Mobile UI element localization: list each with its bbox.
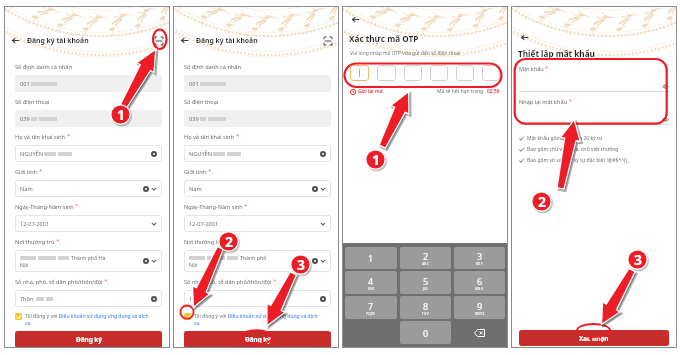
staticText: * [38,168,43,175]
button[interactable]: 9 [454,296,505,319]
staticText: 3 [297,255,305,274]
staticText: Ngày-Tháng-Năm sinh [184,203,243,211]
button[interactable]: Xác nhận [519,330,669,346]
button[interactable]: Back [351,15,360,24]
staticText: 7 [368,300,374,312]
staticText: Mã sẽ hết hạn trong [437,88,484,95]
staticText: Đăng ký tài khoản [196,36,258,45]
button[interactable]: Đăng ký [184,331,331,348]
button[interactable] [404,65,422,81]
other: Clear [151,296,157,302]
staticText: Số điện thoại [184,98,219,106]
staticText: Xác nhận [579,334,609,343]
button[interactable]: Thôn [15,290,162,307]
button[interactable] [456,65,474,81]
staticText: Giới tính [184,168,207,176]
staticText: * [235,133,240,140]
staticText: * [103,278,108,285]
staticText: 8 [423,300,429,312]
staticText: * [568,98,573,105]
staticText: Số định danh cá nhân [184,63,241,71]
staticText: ABC [422,262,429,266]
staticText: MNO [475,287,484,291]
button[interactable]: Thành phố Hà [15,250,162,272]
staticText: Tôi đồng ý với Điều khoản sử dụng ứng dụ… [25,313,155,327]
button[interactable]: 6 [454,271,505,294]
staticText: * [55,238,60,245]
button[interactable] [15,313,22,320]
staticText: * [74,203,79,210]
staticText: 9 [477,300,483,312]
staticText: Nơi thường trú [15,238,55,246]
other: Clear [312,258,318,264]
button[interactable]: 1 [184,290,331,307]
button[interactable] [350,65,369,81]
staticText: 1 [372,150,380,169]
staticText: Đăng ký [76,335,102,344]
staticText: 039 [20,115,30,123]
staticText: Nội [189,261,198,268]
other: Scan QR [155,37,163,45]
button[interactable]: NGUYỄN [15,145,162,162]
staticText: 02:56 [487,88,500,95]
other: Clear [320,296,326,302]
staticText: 5 [423,275,429,287]
staticText: Họ và tên khai sinh [15,133,66,141]
button[interactable]: Back [180,36,189,45]
other: Clear [312,186,318,192]
staticText: * [272,278,277,285]
staticText: Số nhà, phố, tổ dân phố/thôn/đội [184,278,272,286]
staticText: Mật khẩu gồm từ 8 đến 20 ký tự [527,135,603,142]
button[interactable]: 5 [400,271,451,294]
staticText: WXYZ [475,312,485,316]
other: Back [180,36,189,45]
staticText: GHI [368,287,375,291]
button[interactable]: Thành phố [184,250,331,272]
staticText: 001 [189,80,199,88]
button[interactable]: NGUYỄN [184,145,331,162]
button[interactable]: Scan QR [324,37,332,45]
button[interactable]: 12-07-2001 [15,215,162,232]
staticText: Nam [20,185,33,193]
button[interactable]: Back [11,36,20,45]
staticText: 6 [477,275,483,287]
button[interactable]: Show password [519,106,669,125]
staticText: 0 [423,327,429,339]
staticText: NGUYỄN [189,150,212,158]
button[interactable]: Show password [519,73,669,92]
staticText: Đăng ký [245,335,271,344]
staticText: Nơi thường trú [184,238,224,246]
staticText: Bao gồm chữ viết hoa, chữ viết thường [527,146,619,153]
button[interactable]: 0 [400,321,451,344]
staticText: Bao gồm số và một ký tự đặc biệt !@#$*^(… [527,157,630,164]
button[interactable]: 3 [454,247,505,269]
button[interactable] [430,65,448,81]
button[interactable] [184,313,191,320]
staticText: 2 [423,250,429,262]
button[interactable] [377,65,396,81]
other: Clear [151,151,157,157]
button[interactable] [482,65,500,81]
staticText: JKL [423,287,429,291]
staticText: Đăng ký tài khoản [27,36,89,45]
staticText: Nam [189,185,202,193]
button[interactable]: Backspace [454,321,505,344]
button[interactable]: Nam [184,180,331,197]
button[interactable]: Gửi lại mã [350,88,383,95]
button[interactable]: 8 [400,296,451,319]
staticText: 001 [20,80,30,88]
button[interactable]: Nam [15,180,162,197]
button[interactable]: 4 [345,271,397,294]
staticText: Gửi lại mã [358,88,383,95]
staticText: TUV [422,312,429,316]
button[interactable]: 12-07-2001 [184,215,331,232]
button[interactable]: Back [520,33,529,42]
button[interactable]: 2 [400,247,451,269]
button[interactable]: Scan QR [155,37,163,45]
button[interactable]: 7 [345,296,397,319]
button[interactable]: Đăng ký [15,331,162,348]
staticText: Số điện thoại [15,98,50,106]
button[interactable]: 1 [345,247,397,269]
staticText: Họ và tên khai sinh [184,133,235,141]
staticText: * [243,203,248,210]
